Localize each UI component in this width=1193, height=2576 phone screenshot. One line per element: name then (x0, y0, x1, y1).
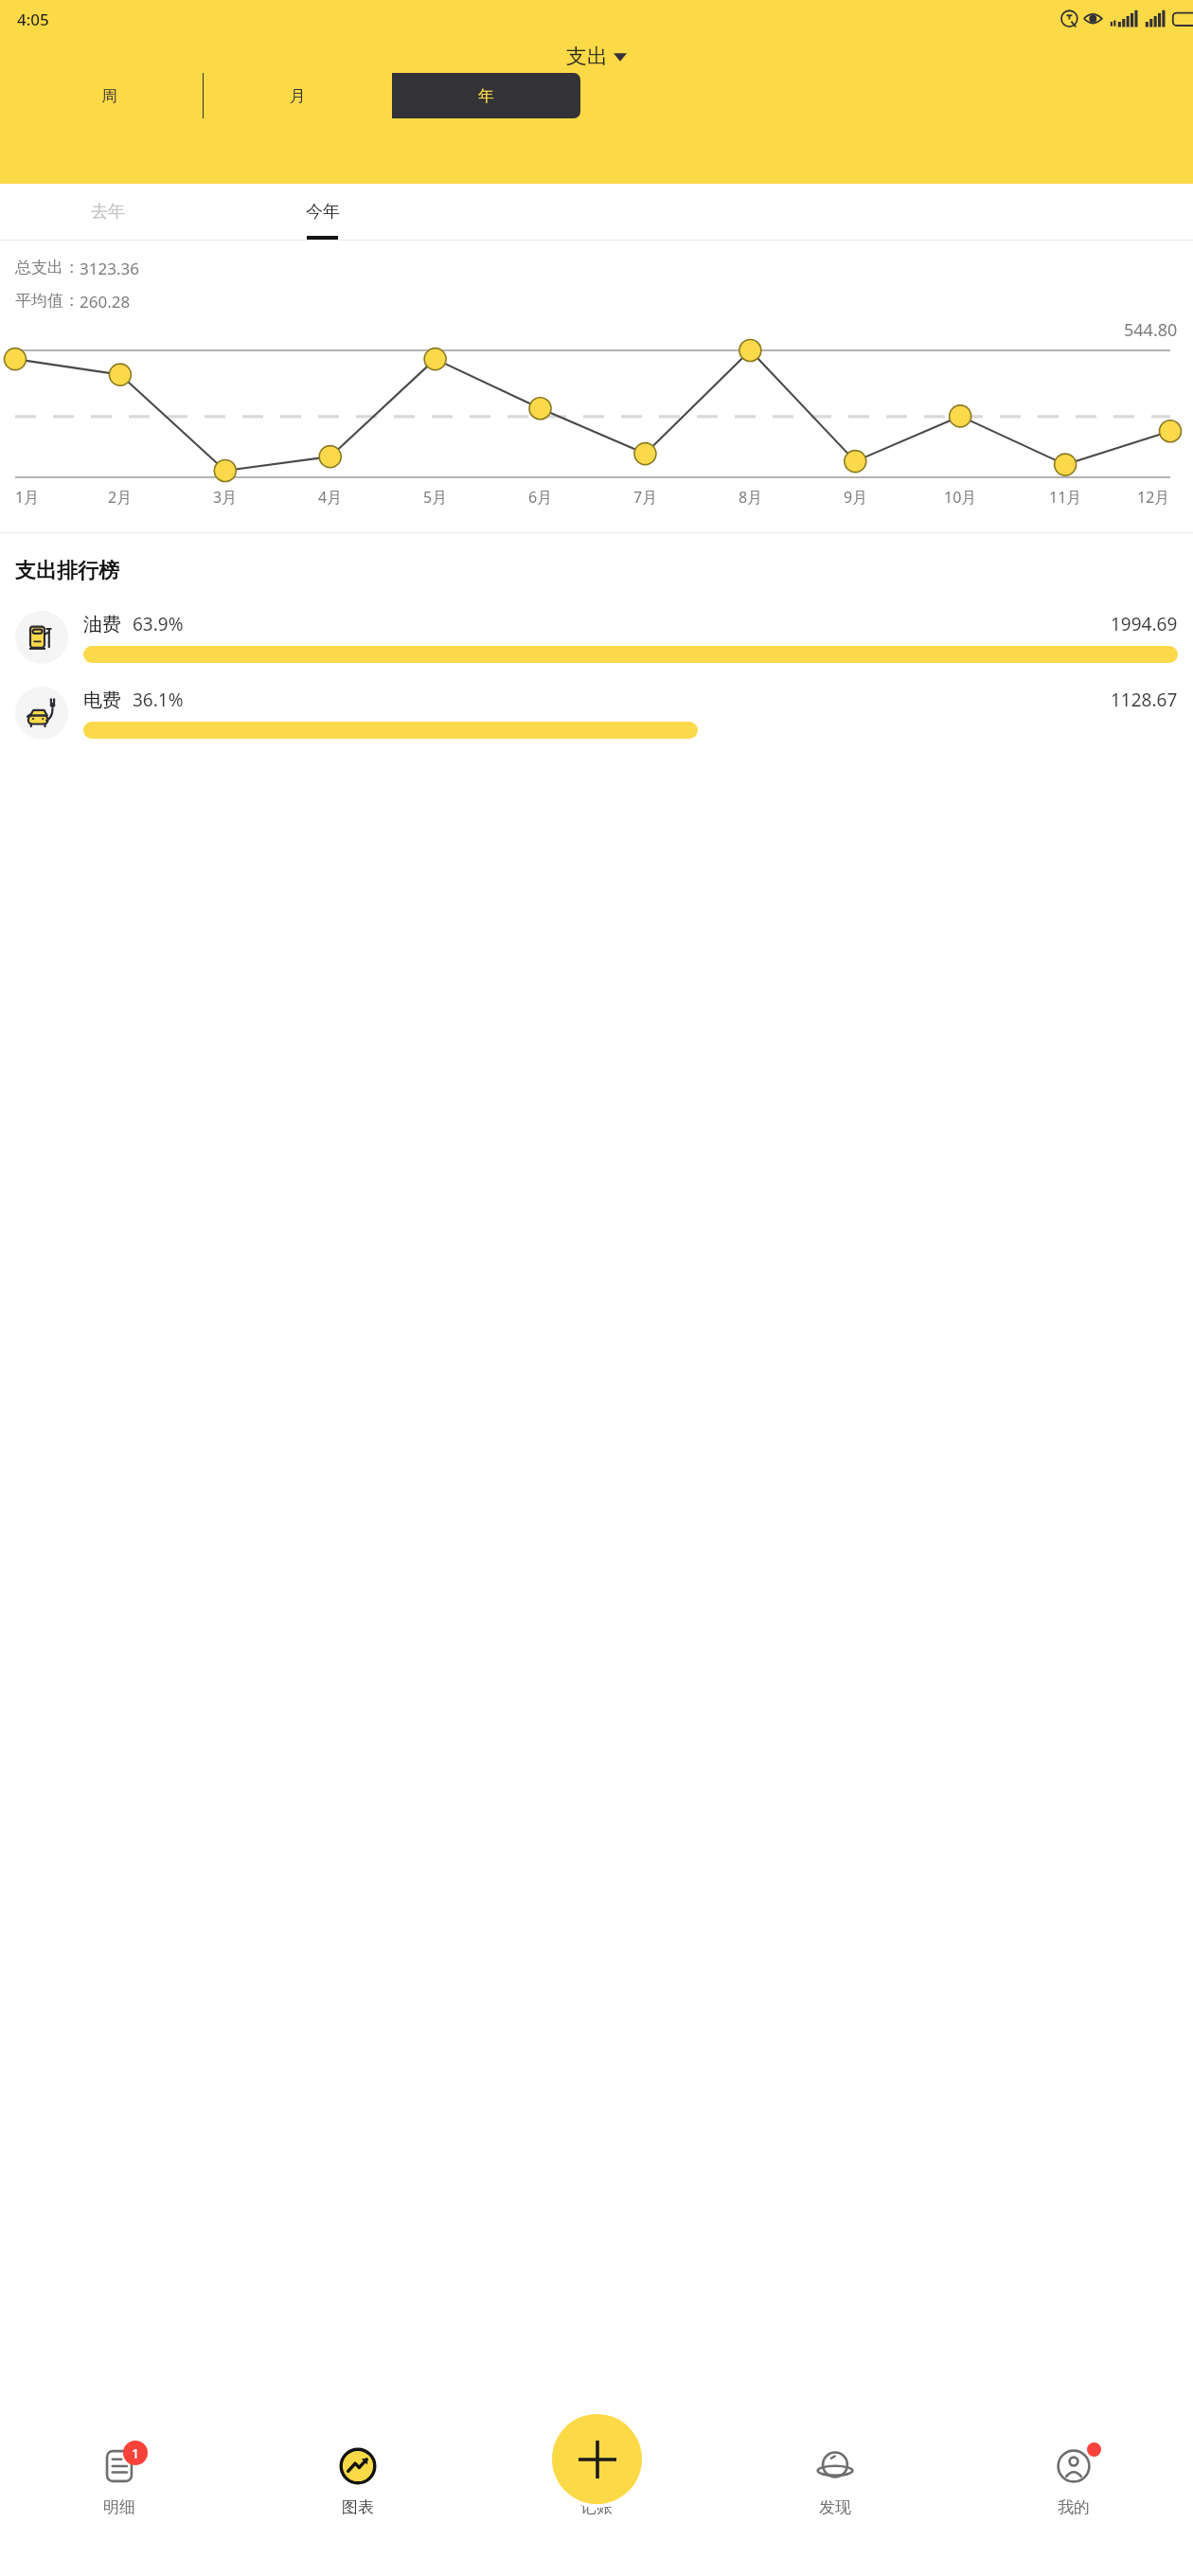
staticText: 1月 (15, 487, 40, 508)
staticText: 电费 (83, 689, 121, 712)
staticText: 1128.67 (1111, 688, 1178, 712)
staticText: 4月 (318, 487, 343, 508)
staticText: 支出排行榜 (15, 558, 119, 584)
button[interactable]: 支出 (559, 40, 634, 74)
button[interactable]: 我的 (954, 2427, 1193, 2576)
staticText: 6月 (528, 487, 553, 508)
staticText: 8月 (739, 487, 763, 508)
staticText: 明细 (103, 2497, 135, 2517)
button[interactable]: 年 (392, 73, 580, 118)
staticText: 1 (132, 2444, 140, 2462)
button[interactable]: 今年 (215, 184, 430, 240)
button[interactable]: 油费 (0, 607, 1193, 668)
staticText: 260.28 (80, 291, 131, 313)
staticText: 我的 (1058, 2497, 1090, 2517)
button[interactable]: 发现 (716, 2427, 954, 2576)
button[interactable]: 月 (204, 73, 392, 118)
button[interactable]: 记账 (477, 2427, 716, 2576)
staticText: 544.80 (1124, 318, 1178, 342)
staticText: 63.9% (133, 612, 184, 636)
staticText: 3月 (213, 487, 238, 508)
staticText: 11月 (1049, 487, 1082, 508)
staticText: 发现 (819, 2497, 851, 2517)
button[interactable]: 去年 (0, 184, 215, 240)
staticText: 总支出： (15, 258, 80, 277)
button[interactable]: Add record (552, 2414, 642, 2504)
button[interactable]: 电费 (0, 683, 1193, 743)
button[interactable]: 图表 (239, 2427, 477, 2576)
staticText: 4:05 (17, 9, 49, 30)
staticText: 油费 (83, 613, 121, 636)
button[interactable]: 周 (15, 73, 203, 118)
staticText: 9月 (844, 487, 868, 508)
staticText: 图表 (342, 2497, 374, 2517)
staticText: 去年 (91, 201, 125, 223)
staticText: 2月 (108, 487, 133, 508)
staticText: 平均值： (15, 291, 80, 311)
staticText: 记账 (580, 2497, 613, 2517)
staticText: 5月 (423, 487, 448, 508)
staticText: 周 (101, 86, 117, 106)
staticText: 12月 (1137, 487, 1170, 508)
staticText: 今年 (306, 201, 340, 223)
staticText: 36.1% (133, 688, 184, 712)
staticText: 年 (478, 86, 494, 106)
staticText: 3123.36 (80, 258, 139, 279)
staticText: 10月 (944, 487, 977, 508)
button[interactable]: 1 (0, 2427, 239, 2576)
staticText: 月 (290, 86, 306, 106)
staticText: 支出 (566, 44, 608, 70)
staticText: 7月 (633, 487, 658, 508)
staticText: 1994.69 (1111, 612, 1178, 636)
